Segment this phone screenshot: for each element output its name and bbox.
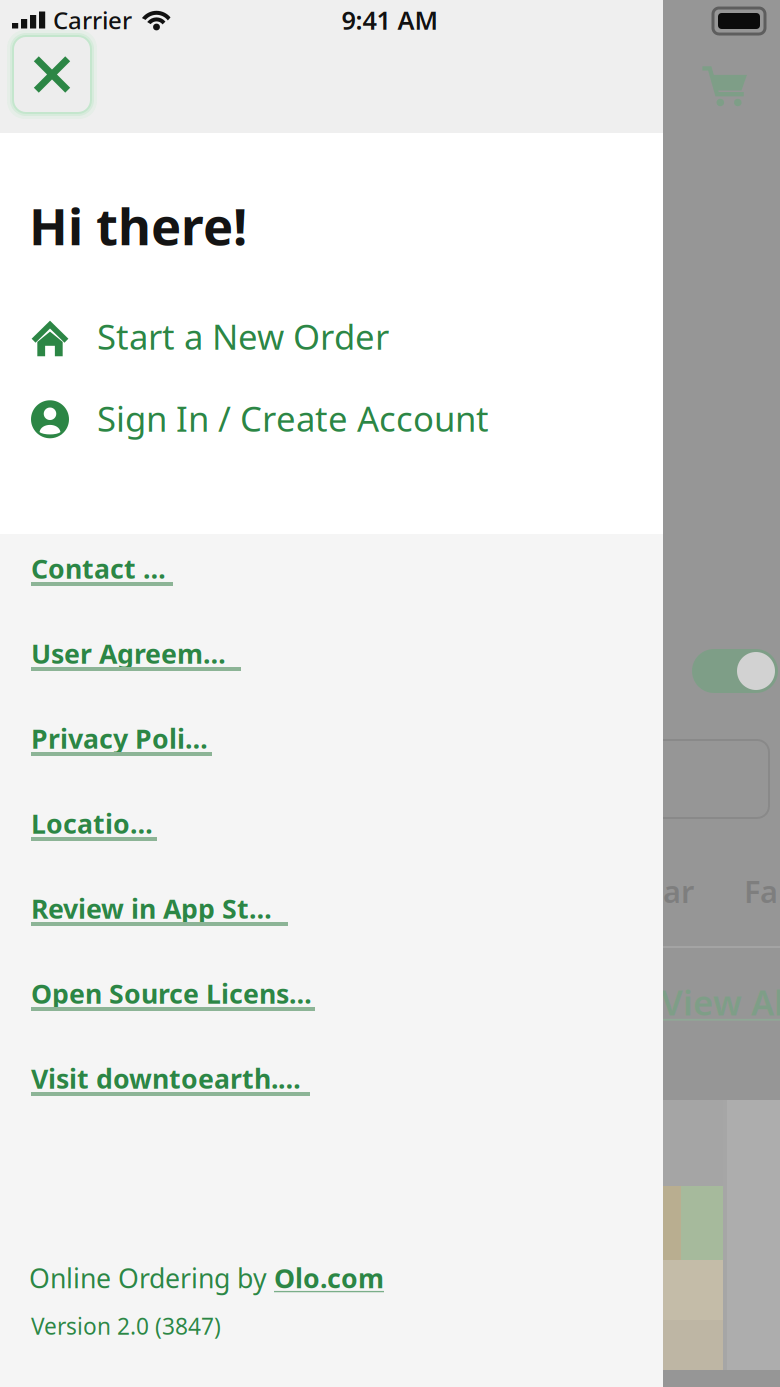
button[interactable]: Close menu xyxy=(7,30,97,119)
staticText: Olo.com xyxy=(274,1260,384,1296)
staticText: Open Source Licenses xyxy=(31,976,315,1011)
button[interactable]: Sign In / Create Account xyxy=(0,377,663,459)
button[interactable]: Visit downtoearth.org xyxy=(0,1065,663,1150)
staticText: Version 2.0 (3847) xyxy=(31,1311,221,1341)
button[interactable]: Online Ordering by xyxy=(0,1261,663,1295)
staticText: View All xyxy=(661,979,780,1025)
button[interactable]: Review in App Store xyxy=(0,895,663,980)
staticText: Locations xyxy=(31,806,157,841)
button[interactable]: User Agreement xyxy=(0,640,663,725)
button[interactable]: Privacy Policy xyxy=(0,725,663,810)
staticText: Start a New Order xyxy=(97,313,389,359)
staticText: Privacy Policy xyxy=(31,721,212,756)
staticText: Hi there! xyxy=(29,192,247,259)
staticText: Review in App Store xyxy=(31,891,288,926)
staticText: Online Ordering by xyxy=(29,1260,274,1296)
button[interactable]: Locations xyxy=(0,810,663,895)
staticText: Visit downtoearth.org xyxy=(31,1061,310,1096)
staticText: Fa xyxy=(744,871,778,911)
staticText: ar xyxy=(663,871,694,911)
button[interactable]: Contact Us xyxy=(0,555,663,640)
staticText: User Agreement xyxy=(31,636,241,671)
button[interactable]: Start a New Order xyxy=(0,295,663,377)
staticText: Sign In / Create Account xyxy=(97,395,489,441)
staticText: Carrier xyxy=(53,4,132,36)
staticText: 9:41 AM xyxy=(341,3,438,37)
staticText: Contact Us xyxy=(31,551,173,586)
button[interactable]: Open Source Licenses xyxy=(0,980,663,1065)
